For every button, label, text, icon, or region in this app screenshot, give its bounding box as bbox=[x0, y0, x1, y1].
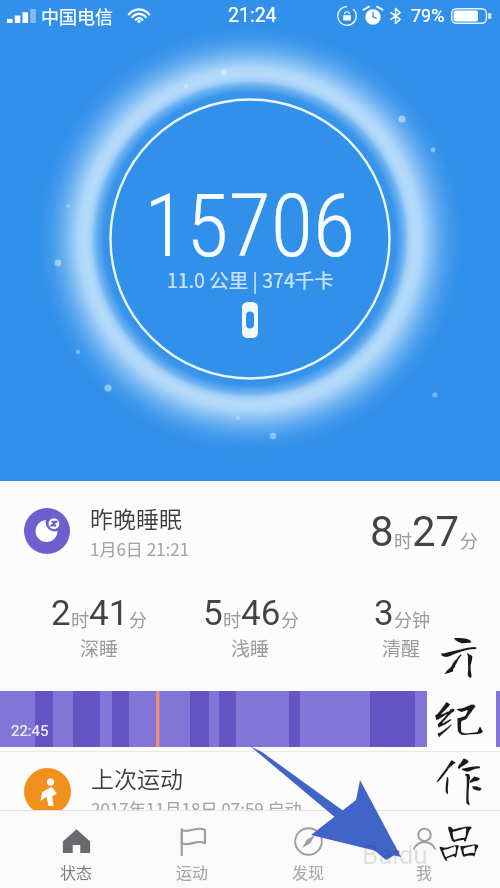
staticText: 作 bbox=[432, 750, 486, 804]
staticText: 分 bbox=[281, 606, 299, 632]
staticText: 3 bbox=[374, 593, 394, 634]
staticText: 中国电信 bbox=[41, 3, 113, 29]
button[interactable]: 我 bbox=[366, 811, 482, 888]
staticText: 41 bbox=[89, 593, 129, 634]
staticText: 分 bbox=[460, 527, 478, 553]
button[interactable]: 发现 bbox=[250, 811, 366, 888]
staticText: 清醒 bbox=[382, 634, 421, 662]
staticText: 11.0 公里 | 374千卡 bbox=[167, 265, 334, 293]
staticText: 状态 bbox=[60, 860, 93, 883]
staticText: 运动 bbox=[176, 860, 209, 883]
staticText: 时 bbox=[394, 527, 412, 553]
staticText: 8 bbox=[370, 507, 394, 556]
staticText: 分钟 bbox=[394, 606, 430, 632]
staticText: 15706 bbox=[144, 175, 356, 277]
staticText: Baidu bbox=[362, 840, 428, 870]
button[interactable]: 运动 bbox=[134, 811, 250, 888]
staticText: 发现 bbox=[292, 860, 325, 883]
staticText: 1月6日 21:21 bbox=[90, 536, 190, 561]
staticText: 2 bbox=[51, 593, 71, 634]
staticText: 21:24 bbox=[228, 4, 277, 27]
staticText: 时 bbox=[71, 606, 89, 632]
staticText: 昨晚睡眠 bbox=[90, 501, 182, 534]
staticText: 深睡 bbox=[80, 634, 119, 662]
staticText: 浅睡 bbox=[231, 634, 270, 662]
button[interactable]: 状态 bbox=[18, 811, 134, 888]
staticText: 纪 bbox=[432, 688, 486, 742]
button[interactable]: 昨晚睡眠 bbox=[0, 488, 500, 567]
staticText: 5 bbox=[203, 593, 223, 634]
staticText: 上次运动 bbox=[91, 761, 183, 794]
staticText: 时 bbox=[223, 606, 241, 632]
staticText: 22:45 bbox=[11, 722, 49, 740]
staticText: 27 bbox=[412, 507, 460, 556]
staticText: 品 bbox=[432, 812, 486, 866]
staticText: 亓 bbox=[432, 626, 486, 680]
staticText: 分 bbox=[129, 606, 147, 632]
staticText: 我 bbox=[416, 860, 433, 883]
staticText: 2017年11月18日 07:59 启动 bbox=[91, 796, 302, 821]
button[interactable]: 上次运动 bbox=[0, 752, 500, 830]
staticText: 46 bbox=[241, 593, 281, 634]
staticText: 79% bbox=[411, 5, 445, 26]
